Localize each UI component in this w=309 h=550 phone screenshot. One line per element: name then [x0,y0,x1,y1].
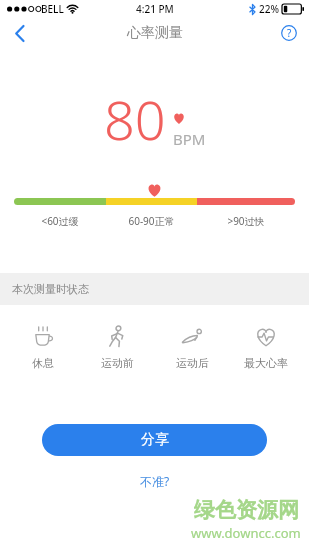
staticText: <60过缓 [14,214,106,228]
button[interactable]: 不准? [126,469,184,493]
staticText: BPM [173,129,206,149]
staticText: 80 [104,82,166,156]
staticText: 绿色资源网 [194,497,299,523]
button[interactable]: 最大心率 [231,323,301,372]
staticText: 运动前 [101,356,134,370]
button[interactable]: Help [269,18,309,48]
staticText: 最大心率 [244,356,288,370]
staticText: 本次测量时状态 [12,282,89,296]
staticText: ? [287,26,292,40]
button[interactable]: 休息 [8,323,78,372]
button[interactable]: Back [0,18,40,48]
staticText: 休息 [32,356,54,370]
staticText: 22% [259,2,279,16]
staticText: BELL [41,2,64,16]
button[interactable]: 运动前 [82,323,152,372]
staticText: 不准? [140,473,170,489]
staticText: www.downcc.com [191,524,301,542]
staticText: >90过快 [197,214,295,228]
button[interactable]: 分享 [42,424,267,456]
staticText: 心率测量 [127,24,183,42]
staticText: 分享 [141,431,169,449]
staticText: 运动后 [176,356,209,370]
button[interactable]: 运动后 [157,323,227,372]
staticText: 60-90正常 [106,214,197,228]
staticText: 4:21 PM [136,2,174,16]
